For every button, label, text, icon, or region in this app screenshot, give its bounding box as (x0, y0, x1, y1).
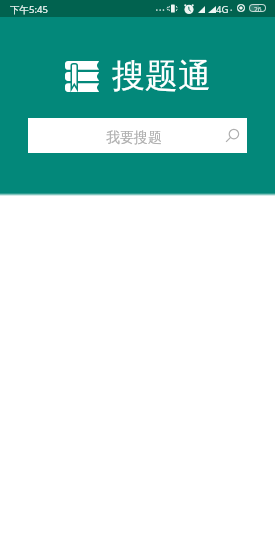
staticText: 我要搜题 (106, 129, 162, 147)
staticText: 4G (216, 3, 229, 16)
staticText: 26 (254, 5, 262, 11)
button[interactable]: 我要搜题 (28, 118, 247, 153)
other: App logo (65, 61, 99, 92)
staticText: 搜题通 (112, 55, 211, 97)
button[interactable]: Search (224, 128, 240, 144)
staticText: 下午5:45 (10, 3, 48, 16)
